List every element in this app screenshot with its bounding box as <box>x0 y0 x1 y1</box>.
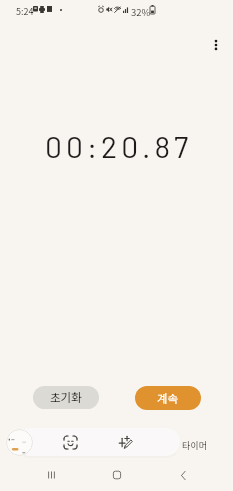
button[interactable]: Write <box>113 430 138 455</box>
staticText: 타이머 <box>182 439 207 452</box>
staticText: 계속 <box>157 390 179 407</box>
button[interactable]: Home <box>104 462 130 488</box>
button[interactable]: 계속 <box>135 386 201 410</box>
button[interactable]: 초기화 <box>33 386 99 409</box>
staticText: 5:24 <box>16 5 34 18</box>
button[interactable]: Preview <box>6 429 33 456</box>
button[interactable]: More options <box>203 32 228 57</box>
staticText: 32% <box>131 5 151 19</box>
button[interactable]: Recents <box>38 462 64 488</box>
button[interactable]: 타이머 <box>182 439 207 452</box>
button[interactable]: Scan <box>58 430 83 455</box>
staticText: 00:20.87 <box>45 128 193 164</box>
button[interactable]: Back <box>170 462 196 488</box>
staticText: 초기화 <box>50 389 82 406</box>
